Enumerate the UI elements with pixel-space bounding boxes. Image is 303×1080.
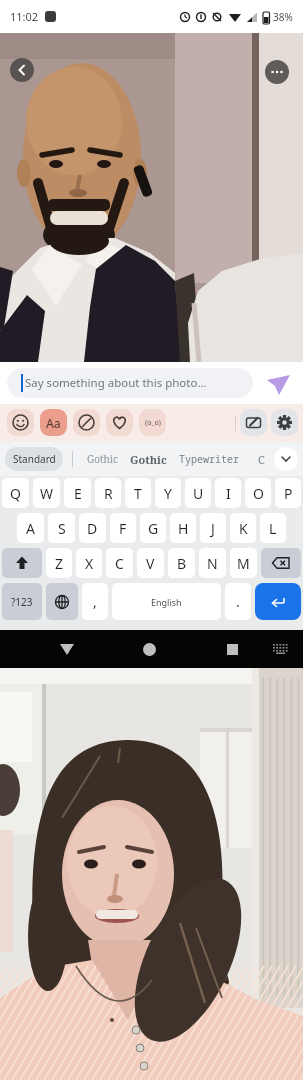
button[interactable]: H bbox=[170, 513, 196, 543]
button[interactable] bbox=[106, 409, 133, 436]
button[interactable]: Aa bbox=[40, 409, 67, 436]
staticText: U bbox=[193, 484, 204, 503]
staticText: English bbox=[151, 596, 182, 608]
staticText: L bbox=[269, 519, 277, 538]
button[interactable] bbox=[240, 409, 267, 436]
staticText: I bbox=[226, 484, 231, 503]
button[interactable] bbox=[274, 447, 298, 471]
staticText: Typewriter bbox=[179, 452, 239, 466]
button[interactable]: I bbox=[215, 478, 241, 508]
staticText: P bbox=[284, 484, 293, 503]
button[interactable] bbox=[255, 583, 301, 620]
staticText: (o_o) bbox=[145, 418, 161, 428]
button[interactable]: D bbox=[79, 513, 106, 543]
staticText: Aa bbox=[46, 415, 61, 431]
button[interactable]: ?123 bbox=[2, 583, 42, 620]
button[interactable]: Z bbox=[46, 548, 72, 578]
button[interactable] bbox=[2, 548, 42, 578]
button[interactable]: G bbox=[140, 513, 166, 543]
staticText: Q bbox=[10, 484, 21, 503]
button[interactable]: T bbox=[125, 478, 151, 508]
button[interactable] bbox=[219, 636, 245, 662]
button[interactable]: X bbox=[76, 548, 102, 578]
button[interactable]: Standard bbox=[5, 447, 63, 471]
button[interactable] bbox=[7, 409, 34, 436]
button[interactable]: Gothic bbox=[80, 447, 124, 471]
staticText: H bbox=[178, 519, 189, 538]
button[interactable]: P bbox=[275, 478, 301, 508]
button[interactable]: (o_o) bbox=[139, 409, 166, 436]
staticText: Gothic bbox=[87, 452, 118, 466]
button[interactable] bbox=[10, 58, 34, 82]
staticText: N bbox=[207, 554, 218, 573]
button[interactable]: W bbox=[33, 478, 60, 508]
button[interactable] bbox=[73, 409, 100, 436]
button[interactable]: J bbox=[200, 513, 226, 543]
staticText: S bbox=[58, 519, 66, 538]
button[interactable]: C bbox=[106, 548, 133, 578]
button[interactable]: Gothic bbox=[126, 447, 170, 471]
button[interactable]: Q bbox=[2, 478, 29, 508]
button[interactable]: B bbox=[168, 548, 195, 578]
staticText: Say something about this photo... bbox=[25, 375, 207, 391]
button[interactable] bbox=[265, 60, 289, 84]
staticText: C bbox=[258, 452, 265, 467]
staticText: B bbox=[177, 554, 187, 573]
button[interactable]: F bbox=[110, 513, 136, 543]
staticText: V bbox=[146, 554, 155, 573]
button[interactable]: A bbox=[17, 513, 44, 543]
staticText: O bbox=[253, 484, 264, 503]
staticText: D bbox=[87, 519, 98, 538]
staticText: F bbox=[119, 519, 127, 538]
button[interactable]: S bbox=[48, 513, 75, 543]
staticText: X bbox=[85, 554, 94, 573]
staticText: A bbox=[26, 519, 35, 538]
button[interactable] bbox=[136, 636, 162, 662]
button[interactable]: M bbox=[230, 548, 257, 578]
staticText: Z bbox=[55, 554, 64, 573]
staticText: 11:02 bbox=[10, 9, 39, 24]
staticText: Gothic bbox=[130, 452, 167, 467]
staticText: R bbox=[104, 484, 113, 503]
button[interactable] bbox=[263, 370, 293, 400]
button[interactable]: R bbox=[95, 478, 121, 508]
staticText: 38% bbox=[273, 10, 293, 24]
staticText: J bbox=[211, 519, 215, 538]
button[interactable]: L bbox=[260, 513, 286, 543]
button[interactable] bbox=[54, 636, 80, 662]
button[interactable] bbox=[267, 636, 293, 662]
button[interactable]: K bbox=[230, 513, 256, 543]
button[interactable]: Y bbox=[155, 478, 181, 508]
button[interactable]: E bbox=[64, 478, 91, 508]
button[interactable]: Typewriter bbox=[172, 447, 246, 471]
button[interactable]: V bbox=[137, 548, 164, 578]
button[interactable] bbox=[46, 583, 78, 620]
staticText: Standard bbox=[13, 452, 56, 466]
button[interactable]: U bbox=[185, 478, 211, 508]
button[interactable] bbox=[261, 548, 301, 578]
staticText: E bbox=[74, 484, 82, 503]
staticText: M bbox=[237, 554, 250, 573]
button[interactable] bbox=[271, 409, 298, 436]
button[interactable]: , bbox=[82, 583, 108, 620]
staticText: Y bbox=[164, 484, 172, 503]
staticText: T bbox=[134, 484, 142, 503]
staticText: C bbox=[115, 554, 124, 573]
staticText: W bbox=[40, 484, 54, 503]
button[interactable]: C bbox=[252, 447, 270, 471]
button[interactable]: Say something about this photo... bbox=[7, 368, 253, 398]
staticText: . bbox=[236, 592, 240, 611]
button[interactable]: N bbox=[199, 548, 226, 578]
button[interactable]: O bbox=[245, 478, 271, 508]
staticText: ?123 bbox=[11, 595, 33, 609]
staticText: K bbox=[239, 519, 248, 538]
staticText: , bbox=[93, 592, 97, 611]
staticText: G bbox=[148, 519, 159, 538]
button[interactable]: . bbox=[225, 583, 251, 620]
button[interactable]: English bbox=[112, 583, 221, 620]
